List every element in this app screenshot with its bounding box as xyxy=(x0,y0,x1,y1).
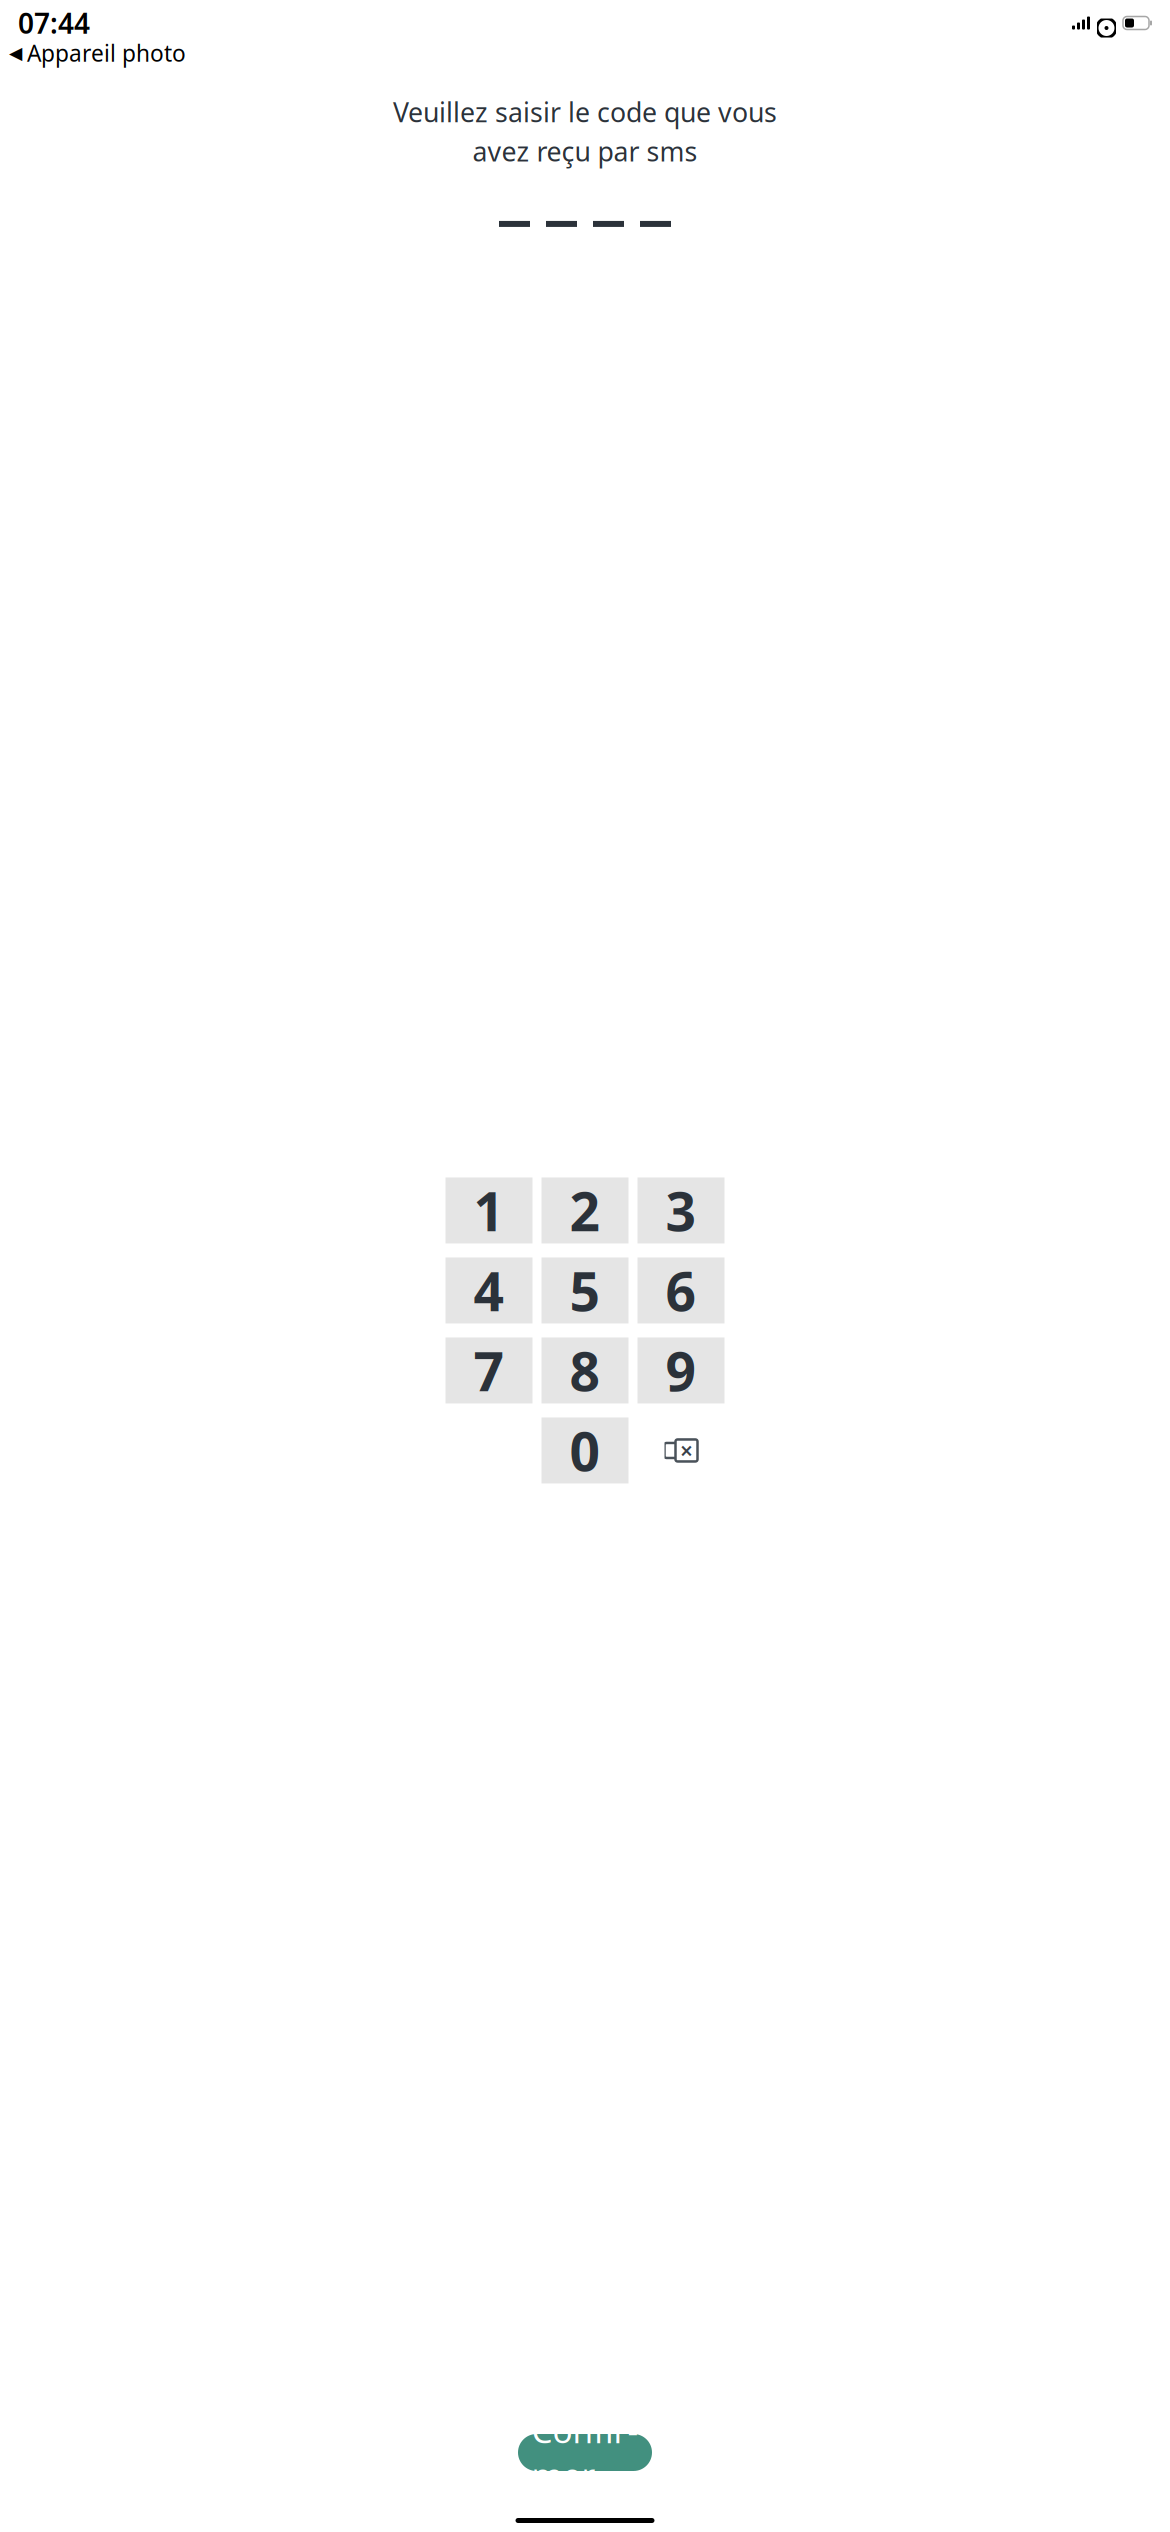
staticText: 9 xyxy=(665,1335,696,1406)
staticText: 3 xyxy=(665,1175,696,1246)
staticText: 8 xyxy=(569,1335,600,1406)
staticText: Veuillez saisir le code que vous xyxy=(393,94,777,129)
staticText: 5 xyxy=(569,1255,600,1326)
staticText: × xyxy=(680,1435,693,1465)
button[interactable]: 7 xyxy=(445,1337,532,1403)
staticText: 7 xyxy=(473,1335,504,1406)
staticText: ◀ xyxy=(9,43,22,63)
staticText: Confirmer xyxy=(531,2408,638,2497)
button[interactable]: 0 xyxy=(541,1417,628,1483)
staticText: 4 xyxy=(473,1255,504,1326)
button[interactable]: 5 xyxy=(541,1257,628,1323)
button[interactable]: 8 xyxy=(541,1337,628,1403)
button[interactable]: ◀ xyxy=(9,38,186,68)
staticText: avez reçu par sms xyxy=(472,133,697,169)
button[interactable]: 4 xyxy=(445,1257,532,1323)
staticText: 2 xyxy=(569,1175,600,1246)
button[interactable]: Confirmer xyxy=(518,2434,652,2471)
button[interactable]: 6 xyxy=(637,1257,724,1323)
staticText: 0 xyxy=(569,1415,600,1486)
button[interactable]: 3 xyxy=(637,1177,724,1243)
button[interactable]: 2 xyxy=(541,1177,628,1243)
button[interactable]: Delete xyxy=(637,1417,724,1483)
button[interactable]: 1 xyxy=(445,1177,532,1243)
staticText: 6 xyxy=(665,1255,696,1326)
staticText: 07:44 xyxy=(18,4,90,42)
staticText: Appareil photo xyxy=(27,38,186,68)
button[interactable]: 9 xyxy=(637,1337,724,1403)
staticText: 1 xyxy=(473,1175,504,1246)
